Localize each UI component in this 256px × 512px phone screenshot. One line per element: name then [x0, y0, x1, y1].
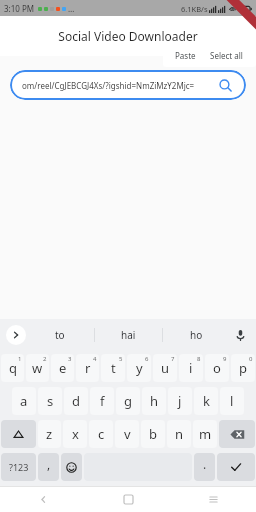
button[interactable]: Shift [1, 420, 36, 448]
button[interactable]: t [101, 354, 125, 382]
staticText: 2 [43, 355, 47, 363]
button[interactable]: b [141, 420, 165, 448]
staticText: ho [190, 328, 203, 342]
staticText: c [98, 425, 105, 443]
button[interactable]: More suggestions [6, 325, 26, 345]
button[interactable]: r [76, 354, 99, 382]
staticText: r [85, 359, 91, 377]
button[interactable]: w [26, 354, 49, 382]
staticText: p [239, 359, 247, 377]
button[interactable]: d [64, 387, 88, 415]
staticText: … [68, 3, 75, 14]
button[interactable]: Search [216, 76, 234, 94]
button[interactable]: k [194, 387, 218, 415]
button[interactable]: Home [86, 486, 171, 512]
button[interactable]: ?123 [1, 453, 36, 481]
button[interactable]: p [231, 354, 255, 382]
staticText: v [124, 425, 131, 443]
staticText: 5 [119, 355, 123, 363]
staticText: t [111, 359, 116, 377]
button[interactable]: Backspace [219, 420, 255, 448]
staticText: 0 [249, 355, 253, 363]
staticText: o [213, 359, 221, 377]
staticText: 6.1KB/s [181, 4, 208, 14]
staticText: q [9, 359, 17, 377]
button[interactable]: . [194, 453, 215, 481]
button[interactable]: f [90, 387, 114, 415]
button[interactable]: Paste [173, 47, 198, 64]
staticText: Paste [175, 50, 196, 61]
staticText: 8 [197, 355, 201, 363]
button[interactable]: y [127, 354, 151, 382]
button[interactable]: Back [0, 486, 86, 512]
staticText: x [72, 425, 79, 443]
staticText: y [136, 359, 143, 377]
staticText: k [203, 392, 210, 410]
button[interactable]: i [179, 354, 203, 382]
staticText: 1 [18, 355, 22, 363]
button[interactable]: a [12, 387, 36, 415]
staticText: 9 [223, 355, 227, 363]
button[interactable]: ho [163, 319, 230, 351]
button[interactable]: u [153, 354, 177, 382]
staticText: . [203, 456, 207, 472]
button[interactable]: h [142, 387, 166, 415]
staticText: to [55, 328, 65, 342]
button[interactable]: v [115, 420, 139, 448]
button[interactable]: e [51, 354, 74, 382]
staticText: 4 [93, 355, 97, 363]
staticText: 3 [68, 355, 72, 363]
button[interactable]: n [167, 420, 191, 448]
button[interactable]: Recents [171, 486, 256, 512]
staticText: ?123 [9, 461, 29, 473]
staticText: d [72, 392, 80, 410]
button[interactable]: Voice input [230, 325, 250, 345]
staticText: a [20, 392, 28, 410]
staticText: Select all [210, 50, 243, 61]
staticText: f [100, 392, 105, 410]
staticText: n [175, 425, 184, 443]
staticText: j [178, 392, 182, 410]
staticText: m [199, 425, 212, 443]
staticText: om/reel/CgJEBCGJ4Xs/?igshid=NmZiMzY2Mjc= [22, 80, 216, 91]
staticText: h [150, 392, 159, 410]
button[interactable]: c [89, 420, 113, 448]
staticText: i [189, 359, 193, 377]
button[interactable]: j [168, 387, 192, 415]
staticText: l [230, 392, 234, 410]
staticText: b [149, 425, 157, 443]
button[interactable]: to [26, 319, 94, 351]
button[interactable]: x [63, 420, 87, 448]
staticText: Social Video Downloader [58, 28, 198, 44]
staticText: hai [121, 328, 136, 342]
button[interactable]: , [38, 453, 59, 481]
button[interactable]: Emoji [61, 453, 82, 481]
button[interactable]: l [220, 387, 244, 415]
staticText: 3:10 PM [4, 3, 35, 14]
staticText: 7 [171, 355, 175, 363]
button[interactable]: z [38, 420, 61, 448]
button[interactable]: Select all [208, 47, 245, 64]
staticText: 6 [145, 355, 149, 363]
button[interactable]: Enter [217, 453, 255, 481]
staticText: u [161, 359, 170, 377]
staticText: , [47, 456, 51, 472]
button[interactable]: s [38, 387, 62, 415]
staticText: s [47, 392, 54, 410]
button[interactable]: om/reel/CgJEBCGJ4Xs/?igshid=NmZiMzY2Mjc= [10, 70, 246, 100]
button[interactable]: hai [95, 319, 162, 351]
staticText: e [59, 359, 67, 377]
staticText: w [32, 359, 43, 377]
staticText: z [46, 425, 53, 443]
button[interactable]: q [1, 354, 24, 382]
staticText: g [124, 392, 132, 410]
button[interactable]: m [193, 420, 217, 448]
button[interactable]: g [116, 387, 140, 415]
button[interactable]: o [205, 354, 229, 382]
